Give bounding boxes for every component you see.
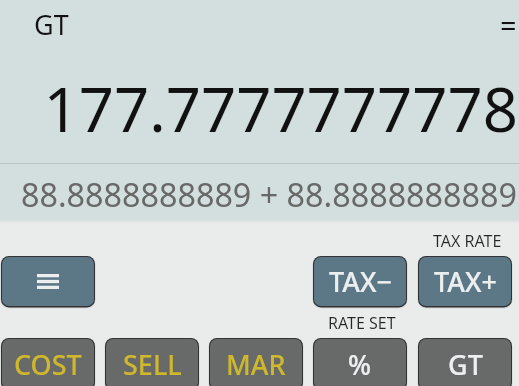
button[interactable]: GT <box>419 339 511 386</box>
button[interactable]: TAX− <box>314 257 406 306</box>
staticText: 177.7777777778 <box>43 66 518 150</box>
staticText: TAX RATE <box>433 230 502 252</box>
staticText: GT <box>448 346 483 383</box>
staticText: % <box>348 346 372 383</box>
staticText: MAR <box>226 346 286 383</box>
button[interactable]: GT <box>34 6 69 43</box>
button[interactable]: TAX+ <box>419 257 511 306</box>
button[interactable]: = <box>500 5 517 44</box>
button[interactable]: SELL <box>106 339 198 386</box>
staticText: TAX+ <box>434 263 497 300</box>
button[interactable]: Menu <box>2 257 94 306</box>
staticText: 88.8888888889 + 88.8888888889 <box>21 172 517 216</box>
button[interactable]: % <box>314 339 406 386</box>
button[interactable]: COST <box>2 339 94 386</box>
staticText: RATE SET <box>328 312 396 334</box>
staticText: TAX− <box>329 263 392 300</box>
staticText: SELL <box>123 346 182 383</box>
button[interactable]: MAR <box>210 339 302 386</box>
staticText: COST <box>14 346 82 383</box>
